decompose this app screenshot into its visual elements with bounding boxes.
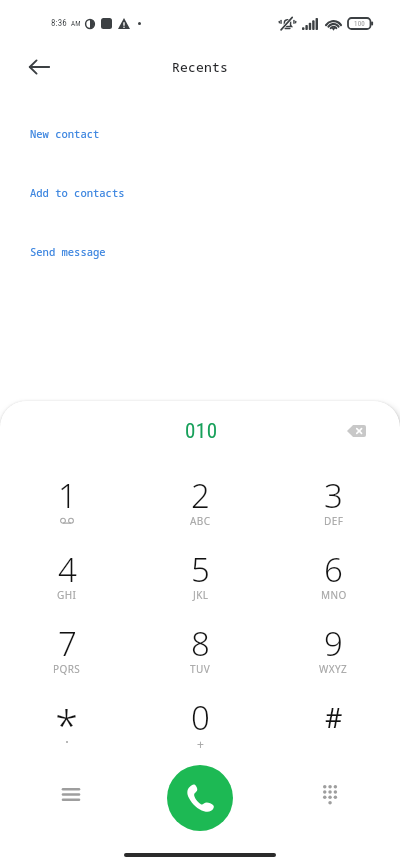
button[interactable]: 0 xyxy=(134,682,267,756)
button[interactable]: 1 xyxy=(0,460,134,534)
button[interactable]: Back xyxy=(19,47,59,87)
staticText: + xyxy=(197,736,204,752)
staticText: Add to contacts xyxy=(30,186,125,200)
staticText: Send message xyxy=(30,245,106,259)
staticText: JKL xyxy=(193,588,209,602)
staticText: 100 xyxy=(354,20,365,28)
staticText: 010 xyxy=(185,419,218,444)
staticText: * xyxy=(55,696,79,753)
staticText: 0 xyxy=(191,695,210,740)
staticText: 3 xyxy=(324,473,343,518)
staticText: 5 xyxy=(191,547,210,592)
staticText: TUV xyxy=(190,662,211,676)
button[interactable]: Send message xyxy=(0,222,400,281)
staticText: 6 xyxy=(324,547,343,592)
staticText: # xyxy=(325,699,343,736)
staticText: AM xyxy=(71,20,81,28)
button[interactable]: Dialpad xyxy=(309,773,349,813)
staticText: 7 xyxy=(58,621,77,666)
staticText: WXYZ xyxy=(319,662,348,676)
staticText: MNO xyxy=(321,588,347,602)
button[interactable]: 4 xyxy=(0,534,134,608)
staticText: 2 xyxy=(191,473,210,518)
button[interactable]: # xyxy=(267,682,400,756)
button[interactable]: * xyxy=(0,682,134,756)
staticText: DEF xyxy=(324,514,344,528)
button[interactable]: 8 xyxy=(134,608,267,682)
button[interactable]: 3 xyxy=(267,460,400,534)
staticText: New contact xyxy=(30,127,100,141)
staticText: 4 xyxy=(58,547,77,592)
button[interactable]: Backspace xyxy=(337,412,375,450)
staticText: Recents xyxy=(172,58,229,76)
button[interactable]: Call log xyxy=(51,774,91,814)
staticText: GHI xyxy=(57,588,77,602)
staticText: 1 xyxy=(58,473,77,518)
button[interactable]: 5 xyxy=(134,534,267,608)
button[interactable]: New contact xyxy=(0,104,400,163)
staticText: ABC xyxy=(190,514,211,528)
button[interactable]: 7 xyxy=(0,608,134,682)
button[interactable]: Add to contacts xyxy=(0,163,400,222)
button[interactable]: 6 xyxy=(267,534,400,608)
button[interactable]: 9 xyxy=(267,608,400,682)
staticText: 8:36 xyxy=(51,18,67,29)
button[interactable]: Call xyxy=(167,765,233,831)
staticText: 8 xyxy=(191,621,210,666)
staticText: PQRS xyxy=(53,662,81,676)
button[interactable]: 2 xyxy=(134,460,267,534)
staticText: 9 xyxy=(324,621,343,666)
